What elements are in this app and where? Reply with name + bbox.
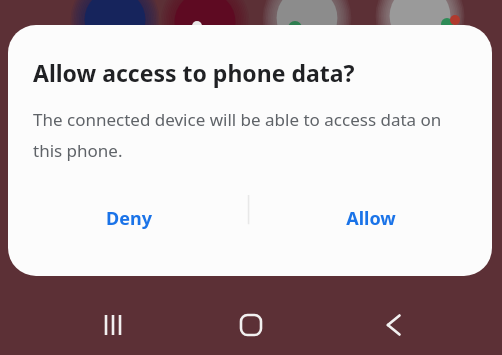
button[interactable]: Recent apps xyxy=(83,295,143,355)
staticText: Deny xyxy=(106,206,152,231)
staticText: Allow access to phone data? xyxy=(33,57,355,88)
button[interactable]: Home xyxy=(221,295,281,355)
button[interactable]: Allow xyxy=(250,187,492,249)
button[interactable]: Deny xyxy=(8,187,250,249)
button[interactable]: Back xyxy=(360,295,420,355)
staticText: The connected device will be able to acc… xyxy=(33,108,458,162)
staticText: Allow xyxy=(346,206,396,231)
